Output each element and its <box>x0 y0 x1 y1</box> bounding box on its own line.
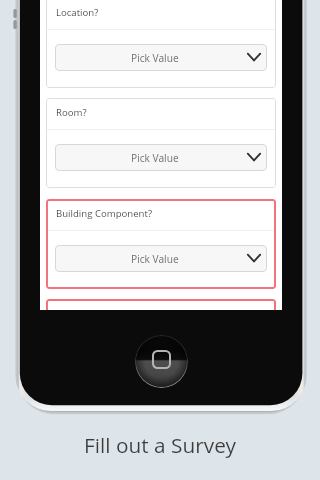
button[interactable]: Building Component? <box>46 199 276 289</box>
button[interactable]: Pick Value <box>55 245 267 272</box>
staticText: Pick Value <box>131 151 179 165</box>
staticText: Location? <box>56 6 99 19</box>
staticText: Pick Value <box>131 51 179 65</box>
button[interactable]: Pick Value <box>55 44 267 71</box>
staticText: Pick Value <box>131 252 179 266</box>
button[interactable]: Room? <box>46 98 276 188</box>
button[interactable]: Damage? <box>46 299 276 310</box>
button[interactable]: Home <box>135 335 188 388</box>
button[interactable]: Location? <box>46 0 276 88</box>
staticText: Room? <box>56 106 87 119</box>
button[interactable]: Pick Value <box>55 144 267 171</box>
staticText: Building Component? <box>56 207 153 220</box>
staticText: Fill out a Survey <box>84 431 236 459</box>
